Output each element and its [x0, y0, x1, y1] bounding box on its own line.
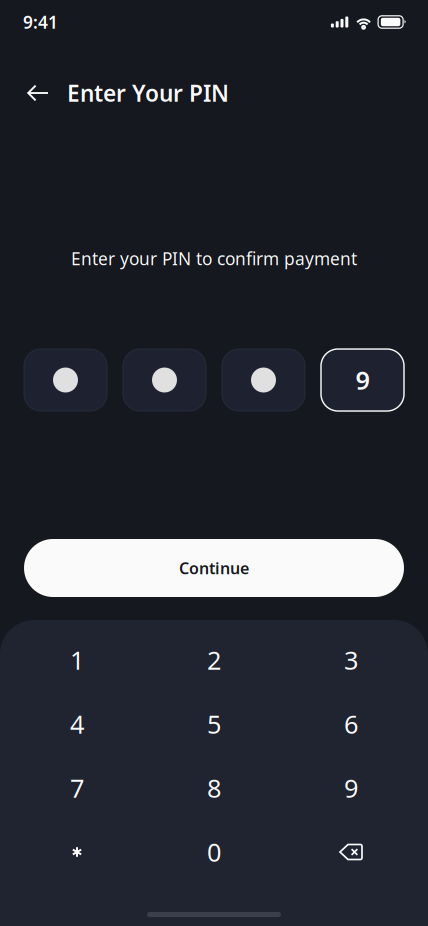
staticText: 1 [70, 643, 84, 677]
staticText: 8 [207, 771, 221, 805]
button[interactable]: 3 [282, 628, 419, 692]
staticText: 4 [70, 707, 84, 741]
button[interactable]: 4 [8, 692, 145, 756]
staticText: 5 [207, 707, 221, 741]
staticText: 9:41 [23, 10, 58, 33]
staticText: Continue [179, 557, 249, 579]
staticText: 2 [207, 643, 221, 677]
staticText: Enter your PIN to confirm payment [71, 247, 357, 270]
button[interactable]: 8 [145, 756, 282, 820]
staticText: 9 [344, 771, 358, 805]
button[interactable]: 1 [8, 628, 145, 692]
button[interactable]: Back [16, 71, 60, 115]
button[interactable]: 5 [145, 692, 282, 756]
staticText: Enter Your PIN [67, 78, 229, 108]
staticText: 9 [355, 363, 369, 397]
button[interactable]: 0 [145, 820, 282, 884]
button[interactable]: 9 [282, 756, 419, 820]
button[interactable]: 7 [8, 756, 145, 820]
staticText: 7 [70, 771, 84, 805]
staticText: 0 [207, 835, 221, 869]
staticText: 3 [344, 643, 358, 677]
button[interactable]: 2 [145, 628, 282, 692]
button[interactable]: Delete [282, 820, 419, 884]
staticText: 6 [344, 707, 358, 741]
button[interactable]: Continue [24, 539, 404, 597]
button[interactable]: 6 [282, 692, 419, 756]
button[interactable]: Asterisk [8, 820, 145, 884]
